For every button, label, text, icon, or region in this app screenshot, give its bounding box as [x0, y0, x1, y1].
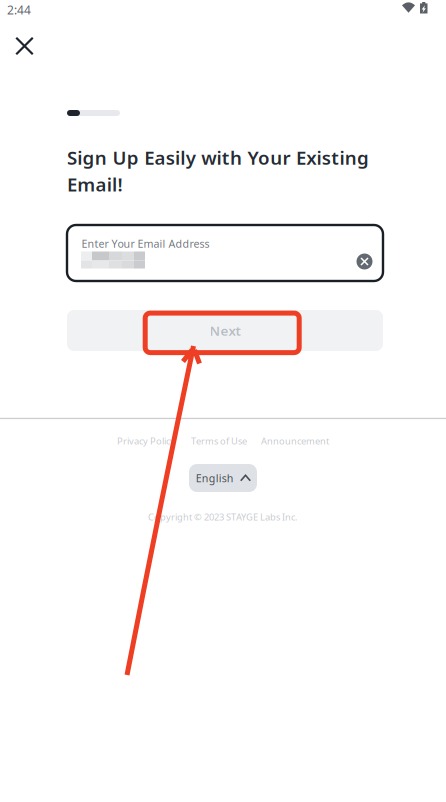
staticText: Next: [209, 322, 240, 339]
button[interactable]: Close: [2, 24, 46, 68]
button[interactable]: Announcement: [261, 435, 329, 447]
button[interactable]: Next: [67, 310, 383, 351]
staticText: 2:44: [7, 2, 31, 18]
staticText: Email!: [67, 172, 122, 197]
staticText: Sign Up Easily with Your Existing: [67, 145, 369, 170]
button[interactable]: Terms of Use: [191, 435, 247, 447]
staticText: English: [196, 471, 234, 485]
staticText: Enter Your Email Address: [81, 236, 209, 251]
staticText: Terms of Use: [191, 435, 247, 447]
staticText: Announcement: [261, 435, 329, 447]
staticText: Copyright © 2023 STAYGE Labs Inc.: [148, 511, 298, 523]
staticText: Privacy Policy: [117, 435, 175, 447]
button[interactable]: Clear text: [348, 245, 380, 277]
button[interactable]: English: [189, 464, 257, 492]
button[interactable]: Privacy Policy: [117, 435, 175, 447]
